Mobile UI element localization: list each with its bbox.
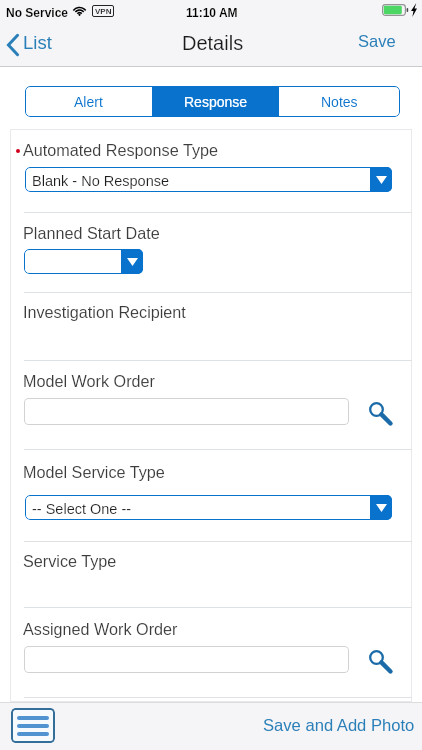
button[interactable]: Save bbox=[345, 28, 422, 56]
button[interactable] bbox=[24, 398, 349, 425]
staticText: VPN bbox=[95, 7, 112, 16]
button[interactable]: -- Select One -- bbox=[25, 495, 392, 520]
staticText: Assigned Work Order bbox=[23, 620, 178, 638]
button[interactable]: Save and Add Photo bbox=[255, 710, 422, 743]
button[interactable]: Blank - No Response bbox=[25, 167, 392, 192]
staticText: Save bbox=[358, 32, 396, 50]
staticText: Notes bbox=[321, 94, 358, 110]
staticText: Alert bbox=[74, 94, 103, 110]
button[interactable] bbox=[24, 249, 143, 274]
staticText: Blank - No Response bbox=[32, 173, 170, 189]
button[interactable]: Alert bbox=[25, 86, 152, 117]
staticText: Details bbox=[182, 32, 244, 54]
staticText: -- Select One -- bbox=[32, 501, 132, 517]
staticText: No Service bbox=[6, 6, 69, 19]
staticText: Save and Add Photo bbox=[263, 716, 415, 735]
button[interactable]: List bbox=[2, 28, 66, 61]
staticText: Planned Start Date bbox=[23, 224, 160, 242]
staticText: Automated Response Type bbox=[23, 141, 218, 159]
button[interactable] bbox=[24, 646, 349, 673]
staticText: Model Work Order bbox=[23, 372, 155, 390]
button[interactable]: Response bbox=[152, 86, 279, 117]
staticText: Investigation Recipient bbox=[23, 303, 186, 321]
staticText: Response bbox=[184, 94, 248, 110]
staticText: List bbox=[23, 32, 52, 53]
staticText: Model Service Type bbox=[23, 463, 165, 481]
button[interactable]: Search bbox=[352, 393, 389, 420]
button[interactable]: Notes bbox=[279, 86, 400, 117]
button[interactable]: Menu bbox=[11, 708, 55, 743]
staticText: Service Type bbox=[23, 552, 117, 570]
staticText: 11:10 AM bbox=[186, 6, 238, 19]
button[interactable]: Search bbox=[352, 641, 389, 668]
